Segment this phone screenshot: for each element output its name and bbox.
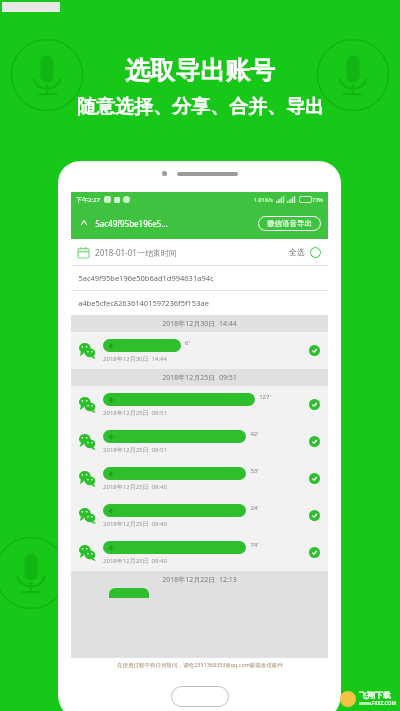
button[interactable]: 127' xyxy=(71,386,328,423)
staticText: 在使用过程中有任何疑问，请给2351368353@qq.com邮箱发送邮件 xyxy=(117,661,283,669)
staticText: 下午2:27 xyxy=(76,196,100,204)
staticText: 全选 xyxy=(289,247,305,257)
button[interactable]: 53' xyxy=(71,460,328,497)
button[interactable]: Selected xyxy=(309,399,320,410)
staticText: 6' xyxy=(185,339,190,347)
staticText: 2018年12月25日 09:51 xyxy=(103,409,167,417)
button[interactable]: Selected xyxy=(309,345,320,356)
button[interactable]: Selected xyxy=(309,510,320,521)
staticText: 微信语音导出 xyxy=(267,219,312,228)
staticText: 42' xyxy=(250,430,259,438)
staticText: 随意选择、分享、合并、导出 xyxy=(77,95,324,119)
staticText: 2018年12月25日 09:51 xyxy=(162,373,237,383)
button[interactable]: 42' xyxy=(71,423,328,460)
button[interactable]: 5ac49f95be196e50b6ad1d994631a94c xyxy=(71,266,328,290)
staticText: 5ac49f95be196e5... xyxy=(95,218,168,229)
staticText: 2018年12月30日 14:44 xyxy=(162,319,237,329)
button[interactable]: Selected xyxy=(309,473,320,484)
staticText: 2018年12月25日 09:40 xyxy=(103,520,167,528)
button[interactable]: 24' xyxy=(71,497,328,534)
staticText: 53' xyxy=(250,467,259,475)
button[interactable]: 74' xyxy=(71,534,328,571)
staticText: 73% xyxy=(312,196,323,203)
button[interactable]: Selected xyxy=(309,547,320,558)
staticText: 5ac49f95be196e50b6ad1d994631a94c xyxy=(78,273,214,283)
staticText: 74' xyxy=(250,541,259,549)
staticText: www.FXXZ.COM xyxy=(359,700,396,707)
button[interactable]: Back xyxy=(78,217,90,229)
staticText: 1.01K/s xyxy=(254,196,273,203)
button[interactable]: Selected xyxy=(309,436,320,447)
button[interactable]: 2018-01-01一结束时间 xyxy=(71,239,328,265)
button[interactable]: Select all xyxy=(310,247,321,258)
button[interactable]: Home xyxy=(171,686,229,707)
staticText: 2018年12月25日 09:40 xyxy=(103,483,167,491)
staticText: 2018年12月25日 09:40 xyxy=(103,557,167,565)
staticText: 24' xyxy=(250,504,259,512)
staticText: a4be5cfec826361401597236f5f153ae xyxy=(78,298,209,308)
staticText: 2018年12月25日 09:51 xyxy=(103,446,167,454)
staticText: 127' xyxy=(259,393,271,401)
staticText: 2018-01-01一结束时间 xyxy=(95,247,177,258)
staticText: 2018年12月30日 14:44 xyxy=(103,355,167,363)
staticText: 飞翔下载 xyxy=(359,690,391,700)
button[interactable]: 6' xyxy=(71,332,328,369)
button[interactable]: a4be5cfec826361401597236f5f153ae xyxy=(71,291,328,315)
staticText: 选取导出账号 xyxy=(125,55,275,86)
staticText: 2018年12月22日 12:13 xyxy=(162,575,237,585)
button[interactable]: 微信语音导出 xyxy=(258,216,321,231)
